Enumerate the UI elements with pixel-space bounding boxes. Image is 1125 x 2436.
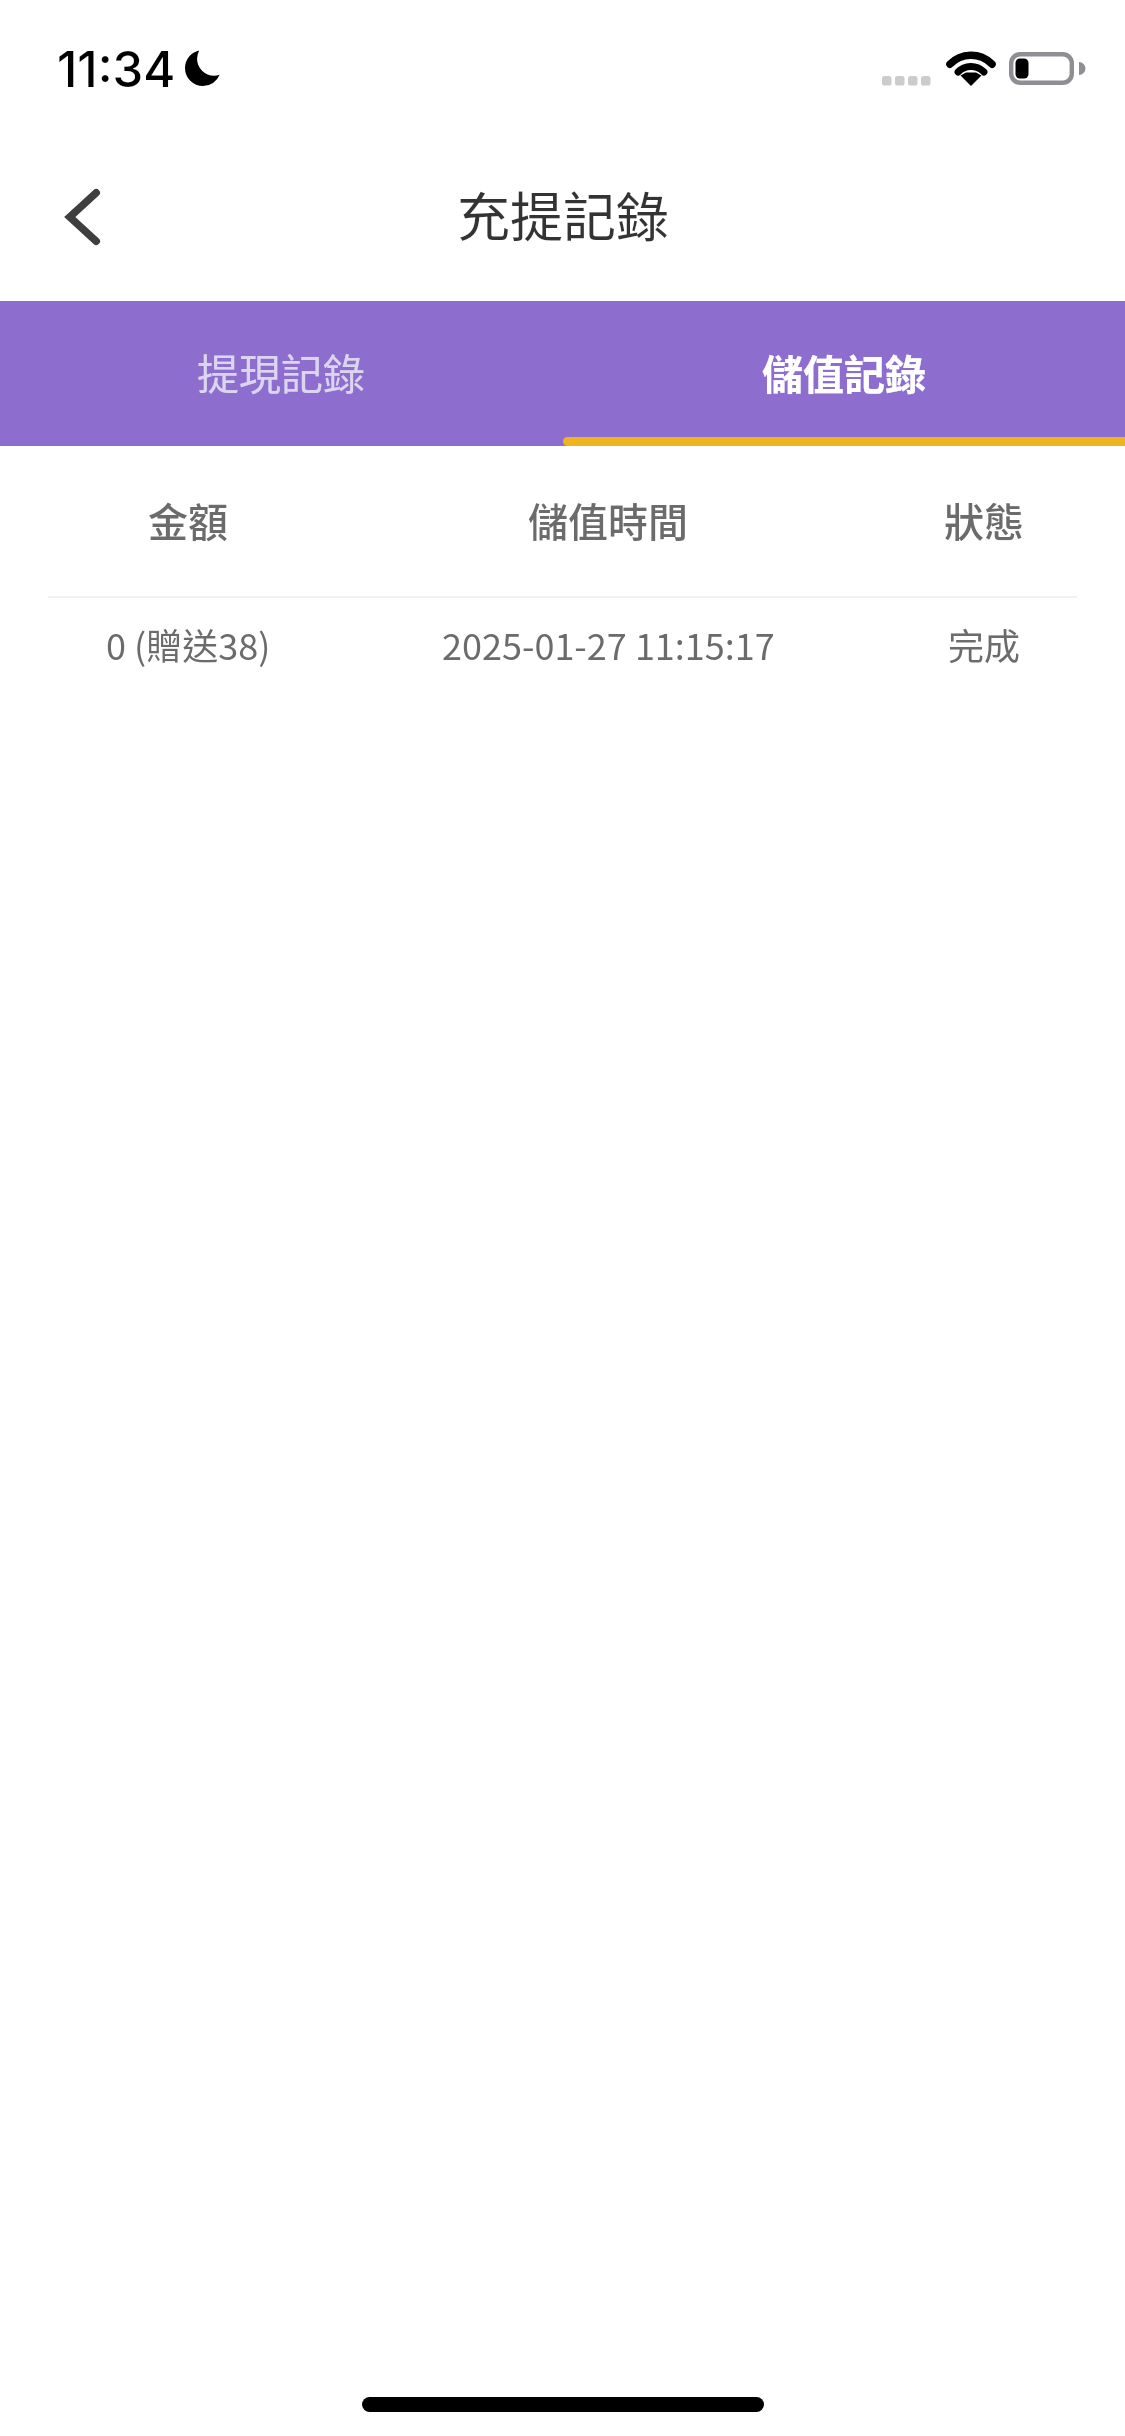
button[interactable]: 儲值記錄	[562, 301, 1125, 446]
staticText: 完成	[948, 618, 1021, 670]
staticText: 11:34	[57, 40, 176, 99]
staticText: 金額	[148, 491, 228, 549]
button[interactable]: Back	[37, 171, 129, 263]
staticText: 充提記錄	[457, 176, 669, 253]
staticText: 2025-01-27 11:15:17	[442, 618, 775, 670]
button[interactable]: 0 (贈送38)	[0, 604, 1125, 684]
staticText: 提現記錄	[197, 341, 366, 402]
button[interactable]: 提現記錄	[0, 301, 562, 446]
staticText: 儲值時間	[528, 491, 688, 549]
staticText: 狀態	[944, 491, 1024, 549]
staticText: 0 (贈送38)	[106, 618, 271, 670]
staticText: 儲值記錄	[762, 342, 926, 401]
